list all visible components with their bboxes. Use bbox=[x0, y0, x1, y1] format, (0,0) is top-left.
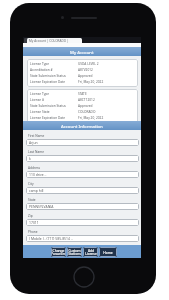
staticText: First Name bbox=[28, 134, 45, 138]
staticText: Home bbox=[103, 250, 113, 254]
button[interactable]: Add License bbox=[83, 247, 98, 257]
staticText: 17011 bbox=[29, 220, 39, 225]
staticText: k bbox=[29, 156, 31, 161]
staticText: State bbox=[28, 198, 36, 202]
staticText: My Account | COLORADO | bbox=[29, 39, 69, 43]
staticText: State Submission Status bbox=[30, 104, 78, 108]
button[interactable]: PENNSYLVANIA bbox=[26, 203, 139, 210]
staticText: A8CT12012 bbox=[78, 98, 95, 102]
staticText: Change Password bbox=[51, 248, 66, 256]
button[interactable]: 17011 bbox=[26, 219, 139, 226]
button[interactable]: Arjun bbox=[26, 139, 139, 146]
staticText: Fri, May 20, 2022 bbox=[78, 80, 104, 84]
button[interactable]: ( Mobile ) - (717) 585-8514 .. bbox=[26, 235, 139, 242]
staticText: License Type bbox=[30, 62, 78, 66]
staticText: License Type bbox=[30, 92, 78, 96]
staticText: State Submission Status bbox=[30, 74, 78, 78]
staticText: Accreditation # bbox=[30, 68, 78, 72]
staticText: COLORADO bbox=[78, 110, 96, 114]
staticText: Zip bbox=[28, 214, 33, 218]
staticText: Last Name bbox=[28, 150, 44, 154]
staticText: Arjun bbox=[29, 140, 38, 145]
staticText: Add License bbox=[85, 248, 97, 256]
staticText: Account Information bbox=[61, 123, 103, 129]
button[interactable]: 110 drive .. bbox=[26, 171, 139, 178]
staticText: Approved bbox=[78, 74, 93, 78]
button[interactable]: My Account | COLORADO | bbox=[27, 38, 82, 44]
button[interactable]: License Type bbox=[27, 59, 138, 87]
staticText: License Expiration Date bbox=[30, 80, 78, 84]
staticText: Phone bbox=[28, 230, 38, 234]
button[interactable]: My Account bbox=[23, 47, 141, 56]
button[interactable]: Background tab bbox=[24, 38, 29, 43]
staticText: USDA LEVEL 2 bbox=[78, 62, 99, 66]
staticText: Custom Stations bbox=[68, 248, 81, 256]
button[interactable]: Home bbox=[99, 247, 117, 257]
button[interactable]: License Type bbox=[27, 89, 138, 123]
button[interactable]: Account Information bbox=[23, 121, 141, 130]
staticText: Address bbox=[28, 166, 41, 170]
staticText: License # bbox=[30, 98, 78, 102]
button[interactable]: Custom Stations bbox=[67, 247, 82, 257]
staticText: License Expiration Date bbox=[30, 116, 78, 120]
button[interactable]: Change Password bbox=[51, 247, 66, 257]
button[interactable]: camp hill bbox=[26, 187, 139, 194]
staticText: License State bbox=[30, 110, 78, 114]
staticText: PENNSYLVANIA bbox=[29, 204, 54, 209]
staticText: Approved bbox=[78, 104, 93, 108]
staticText: Fri, May 20, 2022 bbox=[78, 116, 104, 120]
staticText: ( Mobile ) - (717) 585-8514 .. bbox=[29, 236, 73, 241]
staticText: City bbox=[28, 182, 34, 186]
staticText: STATE bbox=[78, 92, 87, 96]
button[interactable]: k bbox=[26, 155, 139, 162]
staticText: A87V2012 bbox=[78, 68, 93, 72]
staticText: 110 drive .. bbox=[29, 172, 47, 177]
staticText: My Account bbox=[70, 49, 94, 55]
staticText: camp hill bbox=[29, 188, 44, 193]
